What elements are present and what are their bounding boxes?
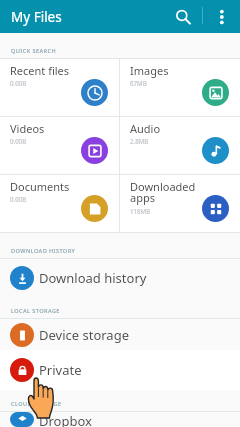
staticText: Device storage [39,326,129,344]
staticText: LOCAL STORAGE [11,307,60,315]
staticText: 118MB [130,207,151,215]
staticText: Dropbox [39,412,92,427]
button[interactable]: Device storage [0,319,240,350]
button[interactable]: Recent files [0,59,119,116]
staticText: Recent files [10,63,76,78]
staticText: DOWNLOAD HISTORY [11,247,76,255]
button[interactable]: Audio [120,117,240,174]
staticText: 67MB [130,79,147,87]
staticText: 0.00B [10,195,27,203]
button[interactable]: Dropbox [0,412,240,427]
button[interactable]: Private [0,350,240,390]
staticText: Documents [10,179,76,194]
staticText: Download history [39,269,147,287]
staticText: Videos [10,121,76,136]
button[interactable]: Search [170,4,196,30]
button[interactable]: Images [120,59,240,116]
staticText: Audio [130,121,196,136]
staticText: Private [39,361,82,379]
staticText: 0.00B [10,137,27,145]
button[interactable]: Documents [0,175,119,232]
staticText: Images [130,63,196,78]
staticText: 0.00B [10,79,27,87]
staticText: My Files [11,8,62,26]
staticText: CLOUD STORAGE [11,400,62,408]
button[interactable]: Downloaded apps [120,175,240,232]
button[interactable]: Download history [0,259,240,296]
staticText: Downloaded apps [130,179,196,206]
staticText: QUICK SEARCH [11,47,56,55]
staticText: 2.8MB [130,137,149,145]
button[interactable]: More options [210,5,234,29]
button[interactable]: Videos [0,117,119,174]
